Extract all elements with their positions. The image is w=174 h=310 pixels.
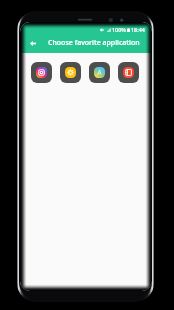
staticText: 100% [112, 26, 126, 33]
staticText: 18:44 [131, 26, 145, 33]
button[interactable]: Application 1 [31, 62, 52, 83]
button[interactable]: Application 3 [89, 62, 110, 83]
button[interactable]: Navigate up [25, 35, 41, 51]
button[interactable]: Application 2 [60, 62, 81, 83]
button[interactable]: Application 4 [118, 62, 139, 83]
staticText: Choose favorite application [48, 38, 140, 48]
